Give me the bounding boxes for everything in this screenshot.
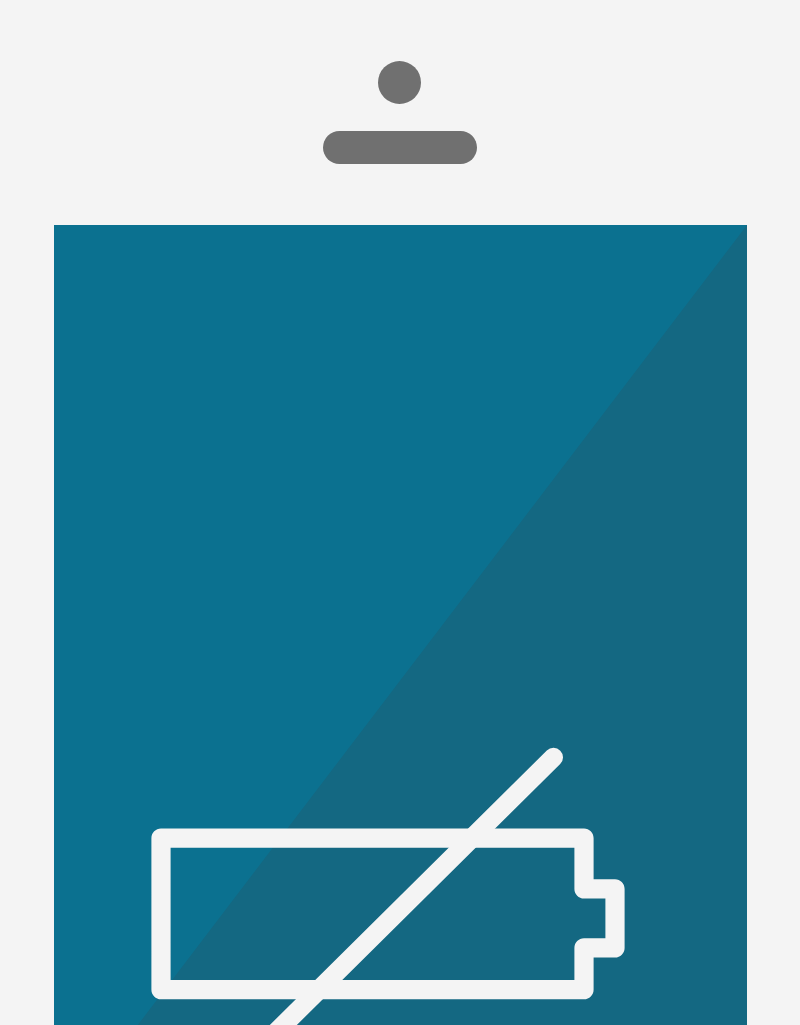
button[interactable]: Hanger knob bbox=[378, 61, 421, 104]
button[interactable]: Battery is empty bbox=[54, 225, 747, 1025]
button[interactable]: Hanger bar bbox=[323, 131, 477, 164]
